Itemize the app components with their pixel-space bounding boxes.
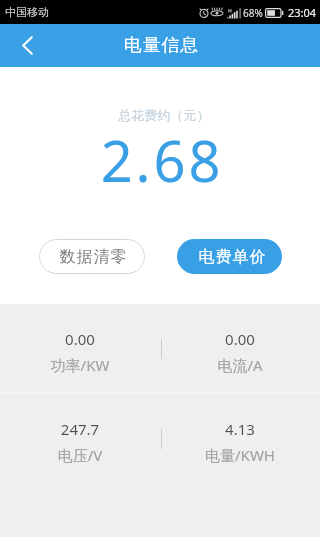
staticText: 68% [243,6,263,20]
button[interactable]: 数据清零 [39,239,145,274]
staticText: 电费单价 [198,247,266,267]
staticText: 0.00 [160,329,320,349]
staticText: 数据清零 [59,247,127,267]
button[interactable]: Back [5,24,49,67]
staticText: 功率/KW [0,355,160,375]
staticText: 23:04 [288,5,317,20]
staticText: 中国移动 [5,5,49,19]
button[interactable]: 电费单价 [177,239,282,274]
staticText: 电压/V [0,445,160,465]
staticText: 0.00 [0,329,160,349]
staticText: 4.13 [160,419,320,439]
staticText: 电流/A [160,355,320,375]
staticText: 2.68 [2,122,320,198]
staticText: 总花费约（元） [4,107,320,123]
staticText: 电量/KWH [160,445,320,465]
staticText: 电量信息 [124,34,200,57]
staticText: 247.7 [0,419,160,439]
